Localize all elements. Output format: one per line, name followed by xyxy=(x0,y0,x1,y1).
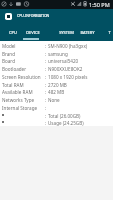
staticText: 1080 x 1920 pixels xyxy=(48,74,88,80)
button[interactable]: Networks Type xyxy=(0,95,113,103)
staticText: Bootloader xyxy=(2,66,27,72)
staticText: : xyxy=(45,89,47,95)
staticText: SYSTEM xyxy=(59,30,74,35)
staticText: Total RAM xyxy=(2,82,24,88)
staticText: : xyxy=(45,43,47,49)
button[interactable]: BATERY xyxy=(77,24,97,41)
staticText: Board xyxy=(2,58,15,64)
button[interactable]: Model xyxy=(0,41,113,49)
staticText: N900XXUE8OK2 xyxy=(48,66,83,72)
button[interactable]: DEVICE xyxy=(23,24,43,41)
staticText: : xyxy=(45,120,47,126)
staticText: BATERY xyxy=(80,30,95,35)
staticText: universal5420 xyxy=(48,58,79,64)
staticText: Brand xyxy=(2,51,16,57)
button[interactable]: SYSTEM xyxy=(56,24,76,41)
staticText: Available RAM xyxy=(2,89,33,95)
button[interactable]: Internal Storage xyxy=(0,103,113,111)
staticText: : xyxy=(45,97,47,103)
button[interactable]: Brand xyxy=(0,49,113,57)
staticText: : xyxy=(45,58,47,64)
staticText: : xyxy=(45,74,47,80)
staticText: Usage (24.25GB) xyxy=(48,120,84,126)
staticText: None xyxy=(48,97,60,103)
staticText: 2720 MB xyxy=(48,82,67,88)
staticText: 482 MB xyxy=(48,89,65,95)
button[interactable]: Board xyxy=(0,56,113,64)
staticText: 1:50 PM xyxy=(89,1,110,8)
staticText: Screen Resolution xyxy=(2,74,41,80)
button[interactable]: : xyxy=(0,111,113,119)
button[interactable]: Bootloader xyxy=(0,64,113,72)
staticText: : xyxy=(45,82,47,88)
staticText: Total (26.00GB) xyxy=(48,113,81,119)
staticText: CPU-INFORMATION xyxy=(17,13,50,18)
staticText: T xyxy=(108,30,111,35)
staticText: : xyxy=(45,51,47,57)
button[interactable]: T xyxy=(99,24,113,41)
staticText: : xyxy=(45,105,47,111)
button[interactable]: Available RAM xyxy=(0,87,113,95)
staticText: CPU xyxy=(9,30,17,35)
button[interactable]: Total RAM xyxy=(0,80,113,88)
button[interactable]: Screen Resolution xyxy=(0,72,113,80)
staticText: Model xyxy=(2,43,16,49)
staticText: DEVICE xyxy=(26,30,40,35)
staticText: : xyxy=(45,66,47,72)
button[interactable]: CPU xyxy=(3,24,23,41)
staticText: samsung xyxy=(48,51,68,57)
staticText: Internal Storage xyxy=(2,105,38,111)
staticText: : xyxy=(45,113,47,119)
staticText: Networks Type xyxy=(2,97,35,103)
staticText: SM-N900 (ha3gxx) xyxy=(48,43,88,49)
button[interactable]: : xyxy=(0,118,113,126)
